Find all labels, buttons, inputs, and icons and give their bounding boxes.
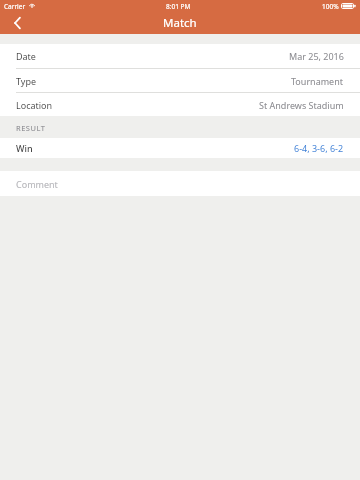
staticText: RESULT (16, 123, 46, 133)
staticText: Tournament (291, 75, 344, 87)
button[interactable]: Back (0, 12, 34, 34)
button[interactable]: Comment (0, 171, 360, 196)
staticText: Type (16, 75, 37, 87)
staticText: Date (16, 50, 36, 62)
staticText: Comment (16, 178, 58, 190)
staticText: 100% (322, 2, 339, 11)
staticText: Mar 25, 2016 (289, 50, 344, 62)
button[interactable]: Date (0, 44, 360, 68)
button[interactable]: Type (0, 69, 360, 92)
staticText: Match (163, 15, 197, 31)
staticText: Carrier (4, 2, 26, 11)
staticText: Win (16, 142, 33, 154)
button[interactable]: Location (0, 93, 360, 116)
staticText: 6-4, 3-6, 6-2 (294, 142, 344, 154)
staticText: 8:01 PM (166, 2, 191, 11)
staticText: St Andrews Stadium (259, 99, 344, 111)
button[interactable]: Win (0, 138, 360, 158)
staticText: Location (16, 99, 53, 111)
